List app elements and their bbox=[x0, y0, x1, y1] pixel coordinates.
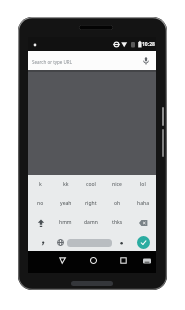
staticText: hmm bbox=[59, 219, 72, 226]
button[interactable]: right bbox=[78, 194, 104, 213]
staticText: yeah bbox=[60, 200, 72, 207]
button[interactable]: kk bbox=[53, 175, 78, 194]
button[interactable]: lol bbox=[130, 175, 156, 194]
staticText: thks bbox=[112, 219, 123, 226]
button[interactable] bbox=[130, 213, 156, 232]
staticText: lol bbox=[140, 181, 146, 188]
button[interactable] bbox=[55, 253, 69, 268]
staticText: cool bbox=[86, 181, 96, 188]
button[interactable] bbox=[67, 239, 112, 247]
staticText: oh bbox=[114, 200, 121, 207]
button[interactable] bbox=[28, 213, 53, 232]
button[interactable]: Search or type URL bbox=[28, 51, 156, 70]
button[interactable] bbox=[41, 240, 46, 247]
button[interactable] bbox=[86, 253, 100, 268]
staticText: right bbox=[85, 200, 97, 207]
button[interactable]: k bbox=[28, 175, 53, 194]
button[interactable]: damn bbox=[78, 213, 104, 232]
button[interactable]: cool bbox=[78, 175, 104, 194]
staticText: haha bbox=[137, 200, 149, 207]
button[interactable] bbox=[140, 254, 154, 267]
button[interactable] bbox=[116, 253, 130, 268]
button[interactable] bbox=[57, 239, 64, 246]
button[interactable]: thks bbox=[104, 213, 130, 232]
staticText: 10:28 bbox=[142, 41, 155, 48]
staticText: k bbox=[39, 181, 42, 188]
staticText: nice bbox=[112, 181, 122, 188]
button[interactable]: no bbox=[28, 194, 53, 213]
staticText: kk bbox=[63, 181, 69, 188]
staticText: damn bbox=[84, 219, 98, 226]
button[interactable]: haha bbox=[130, 194, 156, 213]
button[interactable] bbox=[137, 236, 150, 249]
button[interactable] bbox=[119, 240, 124, 246]
button[interactable]: nice bbox=[104, 175, 130, 194]
staticText: no bbox=[37, 200, 44, 207]
staticText: Search or type URL bbox=[32, 59, 73, 65]
button[interactable]: oh bbox=[104, 194, 130, 213]
button[interactable]: hmm bbox=[53, 213, 78, 232]
button[interactable]: yeah bbox=[53, 194, 78, 213]
